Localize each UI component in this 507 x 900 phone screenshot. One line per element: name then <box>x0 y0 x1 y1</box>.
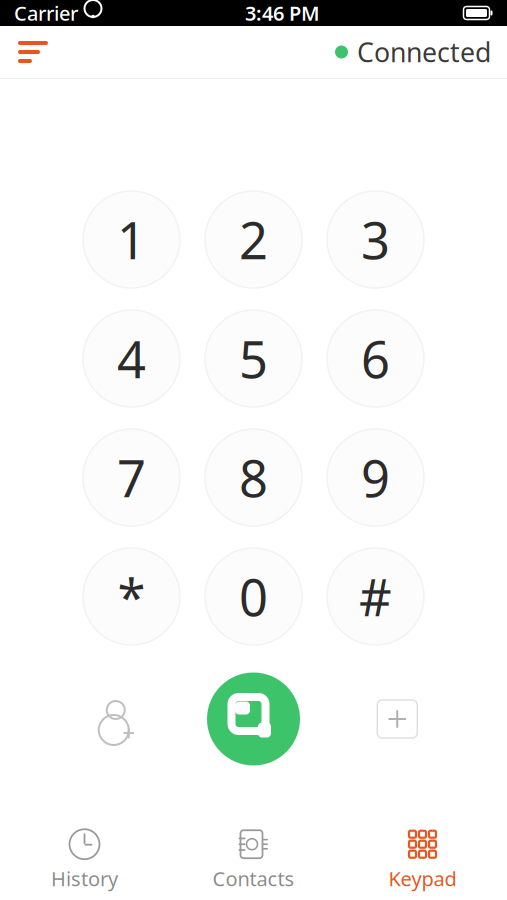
button[interactable]: 8 <box>205 429 302 526</box>
button[interactable]: 5 <box>205 310 302 407</box>
button[interactable]: Keypad <box>338 824 507 896</box>
staticText: * <box>117 563 145 630</box>
button[interactable]: 3 <box>327 191 424 288</box>
staticText: 2 <box>239 206 268 273</box>
button[interactable]: Add contact <box>73 673 159 765</box>
staticText: History <box>51 865 118 892</box>
button[interactable]: 6 <box>327 310 424 407</box>
button[interactable]: History <box>0 824 169 896</box>
staticText: 3:46 PM <box>245 0 320 26</box>
button[interactable]: Contacts <box>169 824 338 896</box>
button[interactable]: # <box>327 548 424 645</box>
staticText: Keypad <box>388 865 456 892</box>
staticText: 4 <box>117 325 146 392</box>
button[interactable]: Delete <box>348 673 434 765</box>
staticText: 5 <box>239 325 268 392</box>
staticText: 9 <box>361 444 390 511</box>
button[interactable]: 7 <box>83 429 180 526</box>
button[interactable]: 9 <box>327 429 424 526</box>
staticText: Carrier <box>14 0 78 26</box>
staticText: 1 <box>117 206 146 273</box>
staticText: 7 <box>117 444 146 511</box>
staticText: Connected <box>357 34 491 70</box>
button[interactable]: Connected <box>335 32 507 72</box>
staticText: 0 <box>239 563 268 630</box>
staticText: 3 <box>361 206 390 273</box>
staticText: 6 <box>361 325 390 392</box>
staticText: Contacts <box>212 865 294 892</box>
button[interactable]: Menu <box>0 32 56 72</box>
button[interactable]: 2 <box>205 191 302 288</box>
button[interactable]: * <box>83 548 180 645</box>
staticText: 8 <box>239 444 268 511</box>
button[interactable]: 1 <box>83 191 180 288</box>
button[interactable]: Call <box>203 669 303 769</box>
staticText: # <box>359 563 392 630</box>
button[interactable]: 4 <box>83 310 180 407</box>
button[interactable]: 0 <box>205 548 302 645</box>
